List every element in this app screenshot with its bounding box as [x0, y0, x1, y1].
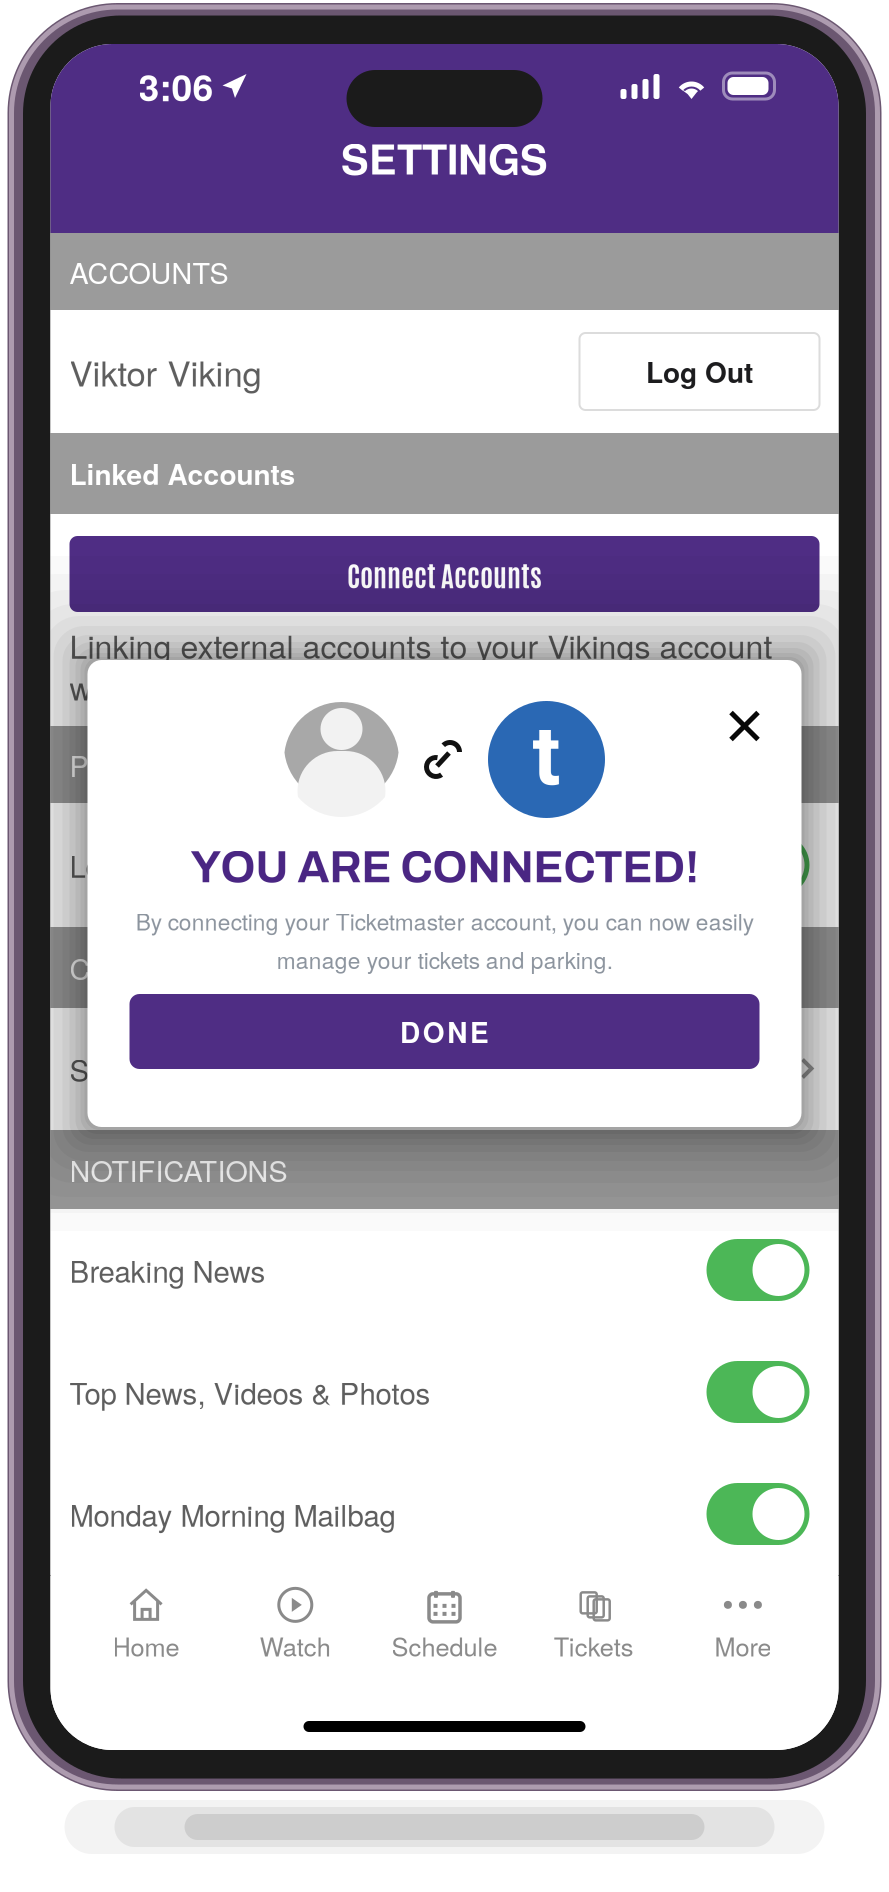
staticText: By connecting your Ticketmaster account,… [135, 904, 753, 975]
staticText: Log Out [646, 351, 753, 392]
staticText: t [532, 708, 560, 805]
staticText: DONE [400, 1011, 489, 1052]
button[interactable]: Breaking News [50, 1209, 838, 1331]
button[interactable]: DONE [129, 994, 759, 1069]
staticText: Breaking News [69, 1249, 265, 1291]
button[interactable]: Home [71, 1581, 221, 1671]
staticText: Viktor Viking [69, 347, 261, 396]
staticText: More [714, 1627, 771, 1664]
staticText: PREFERENCES [69, 744, 285, 785]
staticText: Tickets [554, 1627, 634, 1664]
button[interactable]: Support [50, 1008, 838, 1130]
button[interactable]: Log Out [579, 333, 819, 410]
button[interactable]: Watch [221, 1581, 370, 1671]
staticText: CONTACT US [69, 947, 252, 988]
staticText: 3:06 [138, 59, 213, 113]
staticText: Linking external accounts to your Viking… [69, 622, 772, 710]
button[interactable]: Monday Morning Mailbag [50, 1453, 838, 1575]
button[interactable]: Top News, Videos & Photos [50, 1331, 838, 1453]
staticText: Schedule [391, 1627, 497, 1664]
staticText: Linked Accounts [69, 453, 295, 494]
staticText: Location Services [69, 844, 302, 886]
staticText: SETTINGS [341, 128, 548, 187]
staticText: YOU ARE CONNECTED! [190, 844, 698, 891]
button[interactable]: More [668, 1581, 817, 1671]
staticText: Support [69, 1048, 172, 1090]
staticText: Monday Morning Mailbag [69, 1493, 395, 1535]
button[interactable]: Tickets [519, 1581, 668, 1671]
staticText: Top News, Videos & Photos [69, 1371, 430, 1413]
staticText: Watch [260, 1627, 331, 1664]
staticText: ACCOUNTS [69, 251, 228, 292]
button[interactable]: Location Services [50, 803, 838, 927]
button[interactable]: Connect Accounts [69, 536, 819, 612]
button[interactable]: Close [717, 699, 771, 753]
staticText: Connect Accounts [347, 556, 542, 592]
staticText: NOTIFICATIONS [69, 1149, 287, 1190]
button[interactable]: Schedule [370, 1581, 519, 1671]
staticText: Home [113, 1627, 180, 1664]
